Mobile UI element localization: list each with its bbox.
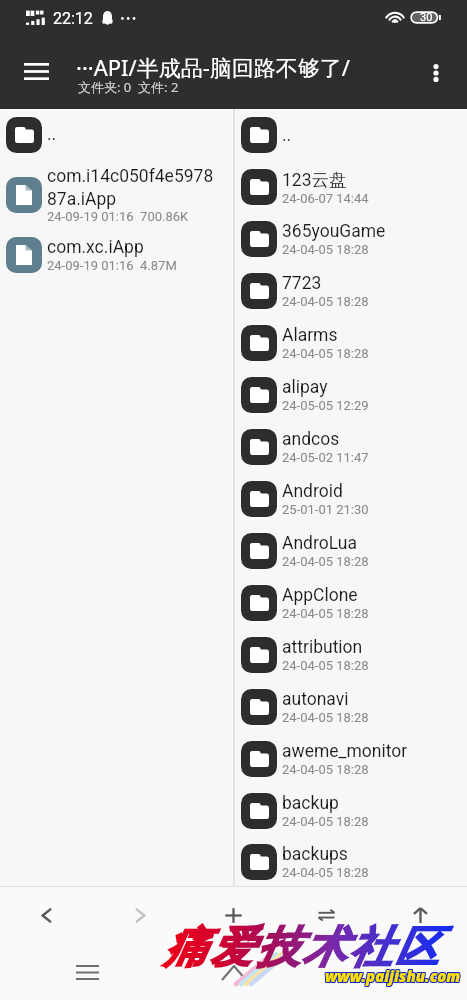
staticText: 24-05-05 12:29 bbox=[282, 398, 369, 413]
staticText: www.paijishu.com bbox=[324, 967, 460, 987]
staticText: AndroLua bbox=[282, 533, 357, 554]
staticText: alipay bbox=[282, 377, 328, 398]
button[interactable]: com.i14c050f4e597887a.iApp bbox=[0, 160, 233, 230]
staticText: 123云盘 bbox=[282, 169, 347, 191]
staticText: www.paijishu.com bbox=[325, 967, 461, 987]
button[interactable]: 365youGame bbox=[235, 213, 467, 265]
button[interactable]: aweme_monitor bbox=[235, 733, 467, 785]
button[interactable]: andcos bbox=[235, 421, 467, 473]
staticText: 24-06-07 14:44 bbox=[282, 191, 369, 206]
button[interactable]: com.xc.iApp bbox=[0, 230, 233, 279]
button[interactable]: backup bbox=[235, 785, 467, 837]
button[interactable]: Android bbox=[235, 473, 467, 525]
staticText: aweme_monitor bbox=[282, 741, 408, 762]
button[interactable]: More options bbox=[416, 48, 456, 98]
button[interactable]: Menu bbox=[16, 51, 56, 91]
staticText: 24-04-05 18:28 bbox=[282, 294, 369, 309]
button[interactable]: Back bbox=[0, 886, 93, 945]
button[interactable]: 7723 bbox=[235, 265, 467, 317]
staticText: attribution bbox=[282, 637, 363, 658]
staticText: 24-05-02 11:47 bbox=[282, 450, 369, 465]
staticText: 24-04-05 18:28 bbox=[282, 606, 369, 621]
staticText: www.paijishu.com bbox=[324, 965, 460, 985]
button[interactable]: Alarms bbox=[235, 317, 467, 369]
staticText: .. bbox=[282, 125, 292, 146]
staticText: www.paijishu.com bbox=[324, 966, 460, 986]
button[interactable]: AndroLua bbox=[235, 525, 467, 577]
button[interactable]: Transfer bbox=[280, 886, 373, 945]
staticText: andcos bbox=[282, 429, 340, 450]
staticText: com.xc.iApp bbox=[47, 237, 144, 258]
staticText: www.paijishu.com bbox=[326, 966, 462, 986]
staticText: 7723 bbox=[282, 273, 322, 294]
staticText: Alarms bbox=[282, 325, 338, 346]
staticText: 24-09-19 01:16 700.86K bbox=[47, 209, 189, 224]
button[interactable]: autonavi bbox=[235, 681, 467, 733]
staticText: Android bbox=[282, 481, 343, 502]
button[interactable]: backups bbox=[235, 837, 467, 886]
button[interactable]: Recents bbox=[27, 945, 147, 1000]
button[interactable]: Forward bbox=[94, 886, 187, 945]
staticText: 痛爱技术社区 bbox=[164, 921, 442, 975]
button[interactable]: alipay bbox=[235, 369, 467, 421]
staticText: com.i14c050f4e597887a.iApp bbox=[47, 166, 222, 209]
staticText: 25-01-01 21:30 bbox=[282, 502, 369, 517]
staticText: 24-04-05 18:28 bbox=[282, 242, 369, 257]
staticText: 24-04-05 18:28 bbox=[282, 658, 369, 673]
staticText: 24-04-05 18:28 bbox=[282, 710, 369, 725]
staticText: www.paijishu.com bbox=[326, 965, 462, 985]
staticText: backup bbox=[282, 793, 339, 814]
staticText: 24-04-05 18:28 bbox=[282, 762, 369, 777]
staticText: 24-04-05 18:28 bbox=[282, 865, 369, 880]
staticText: 22:12 bbox=[53, 9, 93, 28]
staticText: 24-09-19 01:16 4.87M bbox=[47, 258, 177, 273]
staticText: 文件夹: 0 文件: 2 bbox=[78, 78, 179, 96]
staticText: .. bbox=[47, 124, 57, 145]
staticText: AppClone bbox=[282, 585, 358, 606]
staticText: 24-04-05 18:28 bbox=[282, 814, 369, 829]
button[interactable]: New folder bbox=[187, 886, 280, 945]
staticText: 365youGame bbox=[282, 221, 386, 242]
staticText: 24-04-05 18:28 bbox=[282, 554, 369, 569]
staticText: autonavi bbox=[282, 689, 349, 710]
staticText: backups bbox=[282, 844, 348, 865]
staticText: 30 bbox=[420, 11, 433, 24]
button[interactable]: 123云盘 bbox=[235, 161, 467, 213]
button[interactable]: .. bbox=[0, 109, 233, 160]
staticText: www.paijishu.com bbox=[326, 967, 462, 987]
button[interactable]: .. bbox=[235, 109, 467, 161]
staticText: 24-04-05 18:28 bbox=[282, 346, 369, 361]
button[interactable]: Back bbox=[320, 945, 440, 1000]
staticText: www.paijishu.com bbox=[325, 965, 461, 985]
button[interactable]: Home bbox=[174, 945, 294, 1000]
staticText: ···API/半成品-脑回路不够了/ bbox=[76, 52, 420, 82]
button[interactable]: Up bbox=[374, 886, 467, 945]
button[interactable]: AppClone bbox=[235, 577, 467, 629]
staticText: www.paijishu.com bbox=[325, 966, 461, 986]
button[interactable]: attribution bbox=[235, 629, 467, 681]
